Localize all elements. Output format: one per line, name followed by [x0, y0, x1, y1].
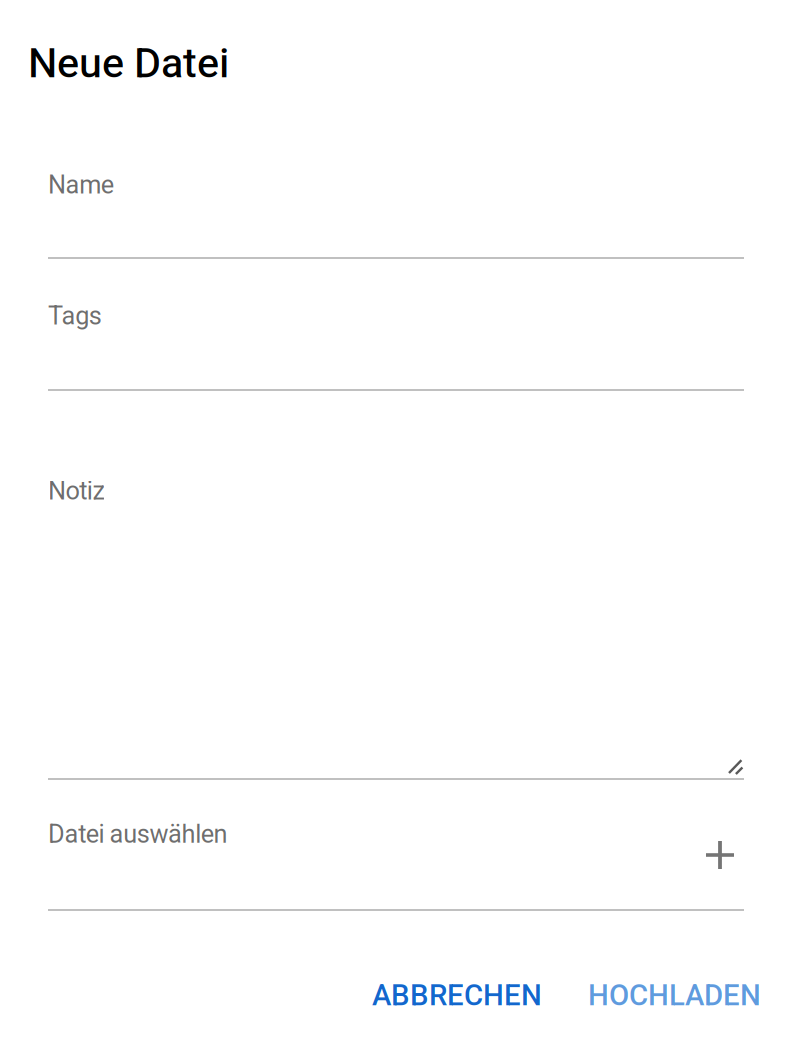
- staticText: Notiz: [48, 476, 105, 506]
- button[interactable]: Datei hinzufügen: [700, 835, 740, 875]
- button[interactable]: Größe ändern: [728, 759, 744, 775]
- staticText: Tags: [48, 301, 102, 331]
- staticText: ABBRECHEN: [372, 978, 542, 1012]
- button[interactable]: HOCHLADEN: [588, 978, 761, 1012]
- button[interactable]: ABBRECHEN: [372, 978, 542, 1012]
- staticText: Neue Datei: [28, 39, 229, 87]
- button[interactable]: Tags: [48, 301, 744, 391]
- button[interactable]: Name: [48, 170, 744, 259]
- staticText: Datei auswählen: [48, 819, 227, 849]
- staticText: HOCHLADEN: [588, 978, 761, 1012]
- staticText: Name: [48, 170, 114, 200]
- button[interactable]: Datei auswählen: [48, 814, 744, 911]
- button[interactable]: Notiz: [48, 476, 744, 780]
